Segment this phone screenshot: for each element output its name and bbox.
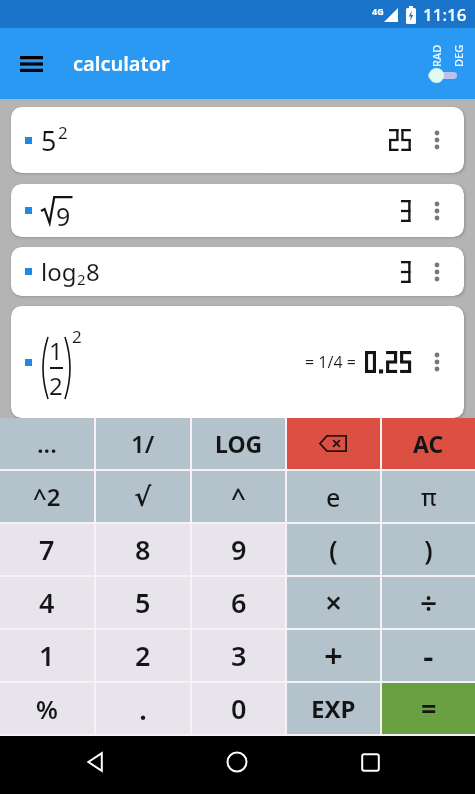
button[interactable]: 7 [0,524,94,575]
staticText: 2 [135,637,151,674]
button[interactable]: 6 [192,577,285,628]
staticText: 1 [39,637,55,674]
staticText: 1/ [131,427,155,460]
button[interactable]: ) [382,524,475,575]
button[interactable]: AC [382,418,475,469]
staticText: 5 [41,122,57,159]
staticText: 4 [39,584,55,621]
button[interactable]: 5 [96,577,190,628]
staticText: calculator [73,50,170,77]
staticText: 8 [135,531,151,568]
staticText: + [324,633,343,678]
button[interactable] [71,738,119,786]
button[interactable] [213,738,261,786]
staticText: RAD [429,44,444,67]
staticText: 3 [231,637,247,674]
button[interactable]: log [11,247,464,296]
button[interactable]: √ [96,471,190,522]
staticText: 9 [56,199,71,229]
staticText: = 1/4 = [305,351,361,373]
button[interactable]: ( [287,524,380,575]
button[interactable]: 4 [0,577,94,628]
button[interactable]: 0 [192,683,285,734]
staticText: × [325,582,343,623]
staticText: ( [329,531,338,568]
button[interactable] [346,738,394,786]
staticText: 2 [58,121,68,144]
staticText: ^2 [33,480,61,513]
button[interactable]: 1 [11,306,464,418]
button[interactable]: × [287,577,380,628]
button[interactable]: ^2 [0,471,94,522]
staticText: - [423,633,434,678]
button[interactable]: % [0,683,94,734]
staticText: 8 [86,255,100,288]
staticText: 6 [231,584,247,621]
staticText: = [421,690,437,727]
staticText: AC [413,428,444,459]
button[interactable]: ... [0,418,94,469]
staticText: 2 [49,369,63,402]
button[interactable]: 3 [192,630,285,681]
staticText: DEG [451,44,466,67]
button[interactable]: = [382,683,475,734]
button[interactable]: LOG [192,418,285,469]
staticText: 2 [77,269,86,289]
staticText: 11:16 [423,3,467,26]
button[interactable]: RAD [415,28,475,99]
button[interactable]: 9 [192,524,285,575]
staticText: LOG [215,428,263,459]
button[interactable]: 2 [96,630,190,681]
button[interactable]: 1/ [96,418,190,469]
staticText: 7 [39,531,55,568]
button[interactable]: 5 [11,107,464,173]
staticText: ) [424,531,433,568]
staticText: 5 [135,584,151,621]
button[interactable]: EXP [287,683,380,734]
staticText: 4G [372,5,384,17]
staticText: ÷ [420,582,438,623]
staticText: 0 [231,690,247,727]
button[interactable]: + [287,630,380,681]
staticText: log [41,255,77,288]
button[interactable]: 9 [11,184,464,237]
button[interactable]: ÷ [382,577,475,628]
staticText: . [139,689,148,728]
button[interactable]: π [382,471,475,522]
button[interactable]: - [382,630,475,681]
staticText: e [326,480,341,514]
button[interactable] [9,42,53,86]
button[interactable]: . [96,683,190,734]
staticText: % [36,692,58,726]
button[interactable] [287,418,380,469]
staticText: 1 [49,334,63,367]
button[interactable]: ^ [192,471,285,522]
staticText: EXP [311,692,356,725]
staticText: ^ [231,479,246,514]
button[interactable]: 1 [0,630,94,681]
button[interactable]: e [287,471,380,522]
staticText: 2 [72,325,82,348]
button[interactable]: 8 [96,524,190,575]
staticText: √ [134,482,152,512]
staticText: 9 [231,531,247,568]
staticText: π [421,481,437,512]
staticText: ... [37,427,57,460]
